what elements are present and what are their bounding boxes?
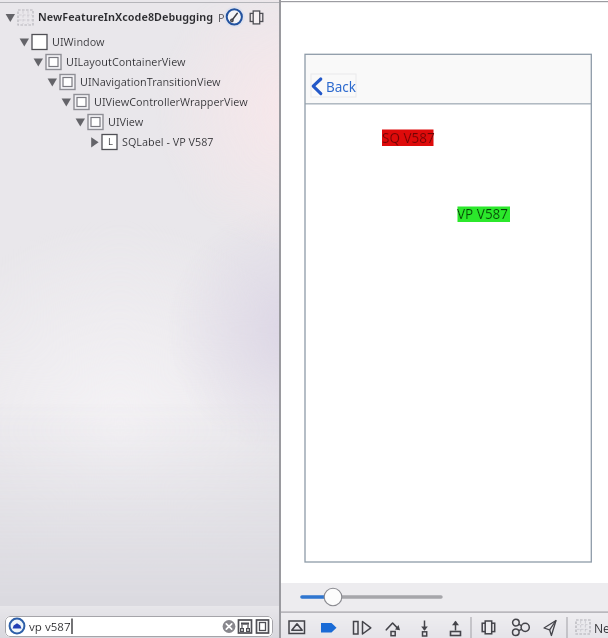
staticText: Ne — [594, 620, 608, 636]
button[interactable]: UILayoutContainerView — [66, 54, 186, 69]
staticText: UILayoutContainerView — [66, 54, 186, 69]
staticText: SQ V587 — [382, 129, 435, 147]
staticText: UIView — [108, 114, 144, 129]
staticText: UINavigationTransitionView — [80, 74, 221, 89]
staticText: UIViewControllerWrapperView — [94, 94, 248, 109]
staticText: VP V587 — [457, 205, 509, 223]
staticText: UIWindow — [52, 34, 105, 49]
staticText: L — [108, 135, 113, 148]
button[interactable]: UIView — [108, 114, 144, 129]
button[interactable]: UINavigationTransitionView — [80, 74, 221, 89]
button[interactable]: SQLabel - VP V587 — [122, 134, 214, 149]
staticText: Back — [326, 78, 357, 96]
button[interactable]: Back — [326, 78, 357, 96]
button[interactable]: UIWindow — [52, 34, 105, 49]
button[interactable]: Search field — [5, 616, 273, 637]
button[interactable]: UIViewControllerWrapperView — [94, 94, 248, 109]
staticText: SQLabel - VP V587 — [122, 134, 214, 149]
staticText: NewFeatureInXcode8Debugging — [38, 9, 213, 24]
button[interactable]: P — [218, 10, 225, 25]
staticText: vp v587 — [29, 619, 71, 635]
staticText: P — [218, 10, 225, 25]
button[interactable]: NewFeatureInXcode8Debugging — [38, 9, 213, 24]
